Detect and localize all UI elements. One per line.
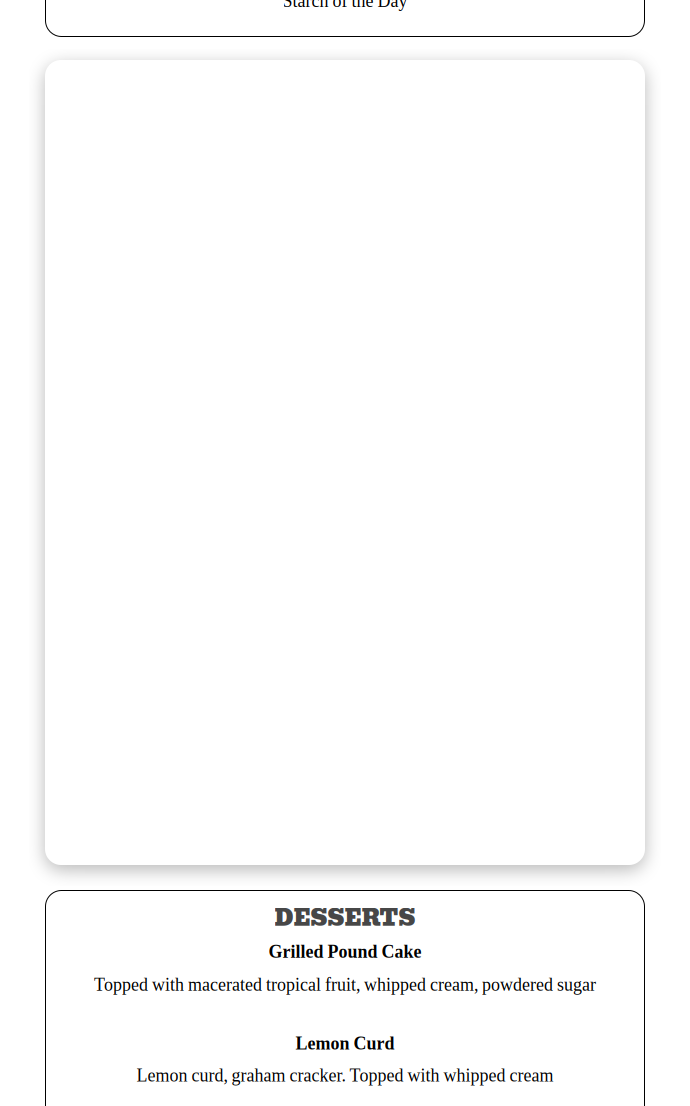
staticText: Starch of the Day: [282, 0, 407, 11]
button[interactable]: Starch of the Day: [45, 0, 645, 37]
staticText: Lemon curd, graham cracker. Topped with …: [136, 1065, 553, 1085]
staticText: Grilled Pound Cake: [268, 942, 421, 962]
staticText: Topped with macerated tropical fruit, wh…: [94, 975, 596, 995]
staticText: DESSERTS: [274, 900, 415, 936]
staticText: Lemon Curd: [295, 1034, 394, 1053]
button[interactable]: DESSERTS: [45, 890, 645, 1106]
